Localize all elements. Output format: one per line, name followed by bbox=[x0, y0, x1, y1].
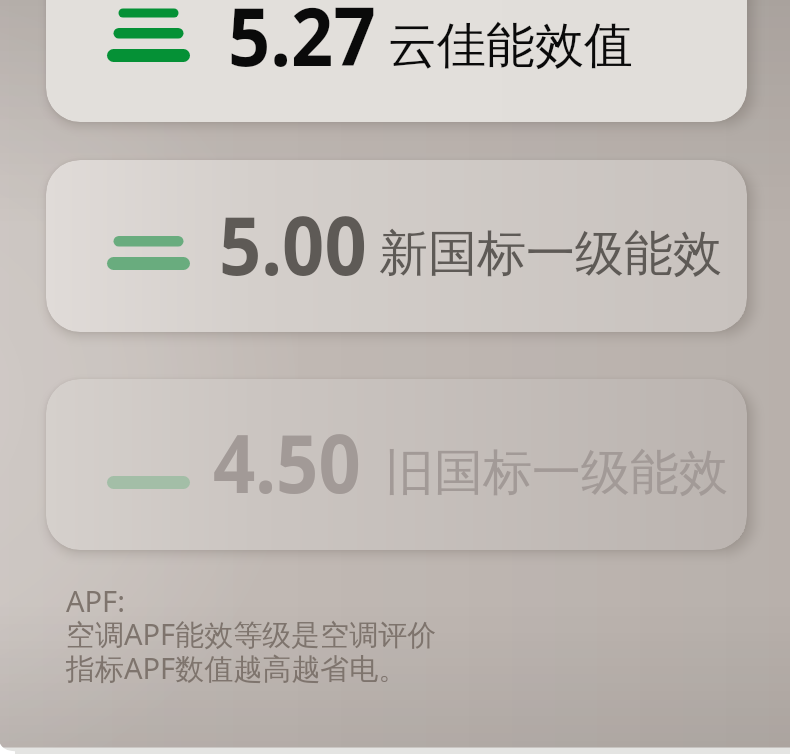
button[interactable]: 新国标一级能效 5.00 bbox=[46, 160, 747, 332]
staticText: 5.00 bbox=[219, 189, 367, 298]
staticText: 4.50 bbox=[213, 407, 361, 516]
staticText: 新国标一级能效 bbox=[379, 223, 722, 285]
staticText: 云佳能效值 bbox=[388, 15, 633, 77]
button[interactable]: 旧国标一级能效 4.50 bbox=[46, 379, 747, 550]
button[interactable]: 云佳能效值 5.27 bbox=[46, 0, 747, 122]
staticText: 5.27 bbox=[228, 0, 376, 89]
staticText: 旧国标一级能效 bbox=[385, 442, 728, 504]
staticText: APF: 空调APF能效等级是空调评价 指标APF数值越高越省电。 bbox=[66, 581, 437, 688]
